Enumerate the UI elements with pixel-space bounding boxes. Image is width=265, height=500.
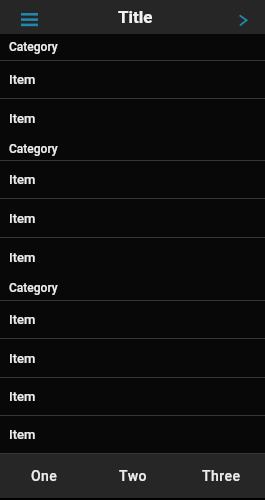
button[interactable]: Category	[0, 34, 265, 60]
button[interactable]: Open navigation menu	[21, 13, 38, 27]
button[interactable]: Item	[0, 199, 265, 237]
button[interactable]: Two	[89, 454, 177, 498]
button[interactable]: Item	[0, 61, 265, 98]
button[interactable]: One	[0, 454, 89, 498]
button[interactable]: Item	[0, 339, 265, 377]
button[interactable]: Category	[0, 276, 265, 300]
staticText: Item	[9, 211, 36, 226]
staticText: Item	[9, 250, 36, 265]
staticText: Item	[9, 312, 36, 327]
staticText: One	[31, 468, 58, 484]
staticText: Three	[202, 468, 241, 484]
staticText: Item	[9, 111, 36, 126]
staticText: Category	[9, 142, 58, 156]
button[interactable]: Item	[0, 416, 265, 453]
button[interactable]: Item	[0, 238, 265, 276]
button[interactable]: Three	[177, 454, 265, 498]
staticText: Title	[118, 7, 153, 27]
staticText: Two	[119, 468, 147, 484]
button[interactable]: Next	[236, 11, 250, 29]
button[interactable]: Item	[0, 301, 265, 338]
staticText: Category	[9, 40, 58, 54]
button[interactable]: Category	[0, 137, 265, 160]
staticText: Item	[9, 351, 36, 366]
staticText: Item	[9, 72, 36, 87]
staticText: Item	[9, 427, 36, 442]
staticText: Item	[9, 172, 36, 187]
button[interactable]: Item	[0, 161, 265, 198]
staticText: Category	[9, 281, 58, 295]
button[interactable]: Item	[0, 99, 265, 137]
button[interactable]: Item	[0, 378, 265, 415]
staticText: Item	[9, 389, 36, 404]
